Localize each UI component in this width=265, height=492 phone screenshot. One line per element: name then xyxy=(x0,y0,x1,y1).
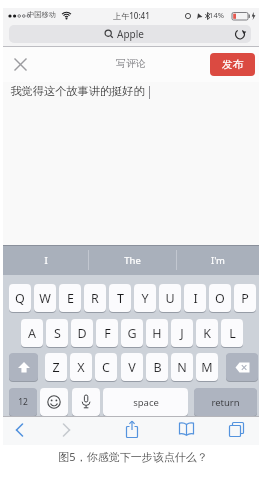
button[interactable]: E xyxy=(59,284,81,312)
button[interactable]: P xyxy=(234,284,256,312)
button[interactable]: T xyxy=(109,284,131,312)
button[interactable]: Y xyxy=(134,284,156,312)
staticText: W xyxy=(39,290,51,307)
staticText: I xyxy=(193,290,198,307)
button[interactable]: K xyxy=(196,319,218,347)
staticText: F xyxy=(104,325,111,342)
button[interactable] xyxy=(124,420,140,439)
staticText: S xyxy=(54,325,61,342)
staticText: 发布 xyxy=(222,58,243,71)
staticText: P xyxy=(241,290,249,307)
button[interactable] xyxy=(13,57,28,72)
staticText: U xyxy=(165,290,175,307)
staticText: R xyxy=(91,290,99,307)
staticText: N xyxy=(177,359,187,376)
staticText: I'm xyxy=(211,254,225,267)
staticText: Y xyxy=(141,290,149,307)
staticText: C xyxy=(102,359,110,376)
button[interactable]: F xyxy=(96,319,118,347)
button[interactable]: Z xyxy=(45,353,67,381)
button[interactable] xyxy=(12,422,28,438)
button[interactable]: The xyxy=(89,252,176,268)
staticText: 上午10:41 xyxy=(113,10,150,21)
button[interactable]: C xyxy=(95,353,117,381)
staticText: M xyxy=(201,359,213,376)
staticText: A xyxy=(28,325,36,342)
button[interactable] xyxy=(228,421,245,437)
staticText: 图5，你感觉下一步该点什么？ xyxy=(58,449,208,464)
button[interactable]: J xyxy=(171,319,193,347)
button[interactable] xyxy=(178,421,195,437)
staticText: X xyxy=(77,359,85,376)
button[interactable]: R xyxy=(84,284,106,312)
staticText: Q xyxy=(15,290,25,307)
button[interactable]: space xyxy=(103,388,188,416)
staticText: E xyxy=(67,290,74,307)
staticText: L xyxy=(229,325,236,342)
button[interactable]: I'm xyxy=(177,252,259,268)
button[interactable] xyxy=(9,353,38,381)
staticText: I xyxy=(44,254,48,267)
button[interactable]: 发布 xyxy=(210,53,255,76)
staticText: G xyxy=(127,325,137,342)
staticText: The xyxy=(124,254,141,267)
staticText: K xyxy=(203,325,211,342)
staticText: V xyxy=(128,359,136,376)
staticText: T xyxy=(117,290,124,307)
button[interactable]: X xyxy=(70,353,92,381)
button[interactable]: A xyxy=(21,319,43,347)
button[interactable]: I xyxy=(184,284,206,312)
button[interactable]: O xyxy=(209,284,231,312)
button[interactable]: W xyxy=(34,284,56,312)
staticText: 12 xyxy=(18,396,28,408)
staticText: H xyxy=(152,325,162,342)
button[interactable] xyxy=(226,353,258,381)
staticText: return xyxy=(211,396,240,409)
staticText: D xyxy=(77,325,87,342)
staticText: Apple xyxy=(117,27,144,41)
button[interactable] xyxy=(40,388,68,416)
button[interactable]: G xyxy=(121,319,143,347)
button[interactable]: V xyxy=(121,353,143,381)
staticText: space xyxy=(133,396,159,409)
button[interactable]: S xyxy=(46,319,68,347)
button[interactable]: I xyxy=(3,252,88,268)
staticText: 写评论 xyxy=(116,57,146,70)
staticText: 14% xyxy=(209,10,224,20)
button[interactable]: U xyxy=(159,284,181,312)
button[interactable]: Q xyxy=(9,284,31,312)
staticText: B xyxy=(153,359,162,376)
staticText: J xyxy=(180,325,184,342)
button[interactable]: return xyxy=(194,388,257,416)
button[interactable] xyxy=(9,25,251,43)
button[interactable]: H xyxy=(146,319,168,347)
button[interactable]: B xyxy=(146,353,168,381)
button[interactable]: M xyxy=(196,353,218,381)
staticText: 中国移动 xyxy=(27,10,56,19)
button[interactable]: L xyxy=(221,319,243,347)
button[interactable] xyxy=(233,27,247,41)
button[interactable]: 12 xyxy=(9,388,37,416)
button[interactable]: N xyxy=(171,353,193,381)
staticText: 我觉得这个故事讲的挺好的 xyxy=(10,84,145,98)
staticText: Z xyxy=(52,359,60,376)
button[interactable]: D xyxy=(71,319,93,347)
button[interactable] xyxy=(72,388,100,416)
button[interactable] xyxy=(58,422,74,438)
staticText: O xyxy=(215,290,225,307)
